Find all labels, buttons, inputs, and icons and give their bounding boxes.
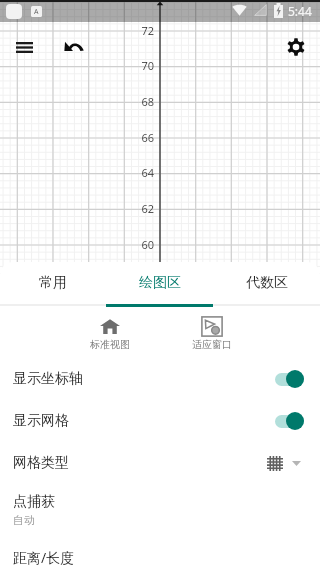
staticText: 适应窗口 [192, 338, 232, 351]
staticText: 显示网格 [13, 412, 69, 430]
button[interactable]: 适应窗口 [181, 315, 242, 355]
staticText: 显示坐标轴 [13, 370, 83, 388]
button[interactable]: Undo [63, 40, 84, 52]
staticText: 绘图区 [139, 274, 181, 292]
staticText: 常用 [39, 274, 67, 292]
button[interactable]: Menu [10, 33, 38, 61]
button[interactable]: 距离/长度 [0, 536, 320, 572]
staticText: 代数区 [246, 274, 288, 292]
staticText: 网格类型 [13, 454, 69, 472]
button[interactable]: 标准视图 [79, 315, 140, 355]
button[interactable]: Settings [282, 33, 310, 61]
button[interactable]: 点捕获 [0, 484, 320, 538]
staticText: A [34, 7, 39, 17]
button[interactable]: 显示坐标轴 [0, 358, 320, 400]
button[interactable]: 绘图区 [106, 262, 213, 304]
button[interactable]: 代数区 [213, 262, 320, 304]
staticText: 72 [133, 23, 154, 38]
staticText: 60 [133, 237, 154, 252]
staticText: 68 [133, 94, 154, 109]
staticText: 66 [133, 130, 154, 145]
button[interactable]: 网格类型 [0, 442, 320, 484]
button[interactable]: 常用 [0, 262, 106, 304]
staticText: 5:44 [288, 3, 312, 19]
staticText: 距离/长度 [13, 548, 75, 567]
staticText: 70 [133, 58, 154, 73]
staticText: 点捕获 [13, 493, 55, 511]
staticText: 64 [133, 165, 154, 180]
staticText: 标准视图 [90, 338, 130, 351]
staticText: 62 [133, 201, 154, 216]
staticText: 自动 [13, 513, 35, 527]
button[interactable]: 显示网格 [0, 400, 320, 442]
